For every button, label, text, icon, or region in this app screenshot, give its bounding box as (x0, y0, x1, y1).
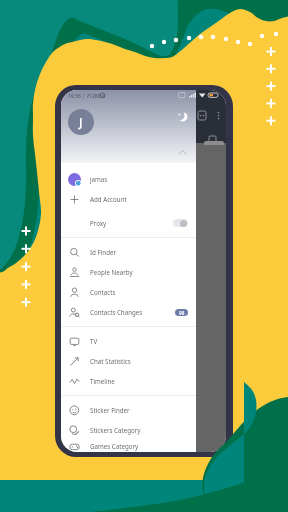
button[interactable]: Games Category (61, 440, 196, 452)
button[interactable]: Contacts (61, 282, 196, 302)
staticText: jamas (90, 175, 108, 183)
button[interactable]: Add Account (61, 189, 196, 209)
button[interactable]: People Nearby (61, 262, 196, 282)
button[interactable]: Stickers Category (61, 420, 196, 440)
staticText: Games Category (90, 442, 139, 450)
button[interactable]: Contacts Changes (61, 302, 196, 322)
button[interactable]: Id Finder (61, 242, 196, 262)
button[interactable]: TV (61, 331, 196, 351)
staticText: 19:36 | 712KB/s (68, 93, 106, 100)
staticText: Add Account (90, 195, 127, 203)
staticText: Sticker Finder (90, 406, 130, 414)
staticText: 98 (179, 310, 185, 316)
staticText: Id Finder (90, 248, 116, 256)
button[interactable]: Chat Statistics (61, 351, 196, 371)
staticText: Contacts Changes (90, 308, 143, 316)
button[interactable]: jamas (61, 169, 196, 189)
staticText: J (79, 114, 83, 130)
staticText: Stickers Category (90, 426, 141, 434)
staticText: Contacts (90, 288, 116, 296)
staticText: Timeline (90, 377, 115, 385)
staticText: Chat Statistics (90, 357, 131, 365)
button[interactable]: Proxy (61, 213, 196, 233)
staticText: TV (90, 337, 98, 345)
staticText: Proxy (90, 219, 107, 227)
button[interactable]: Timeline (61, 371, 196, 391)
staticText: People Nearby (90, 268, 133, 276)
button[interactable]: Sticker Finder (61, 400, 196, 420)
